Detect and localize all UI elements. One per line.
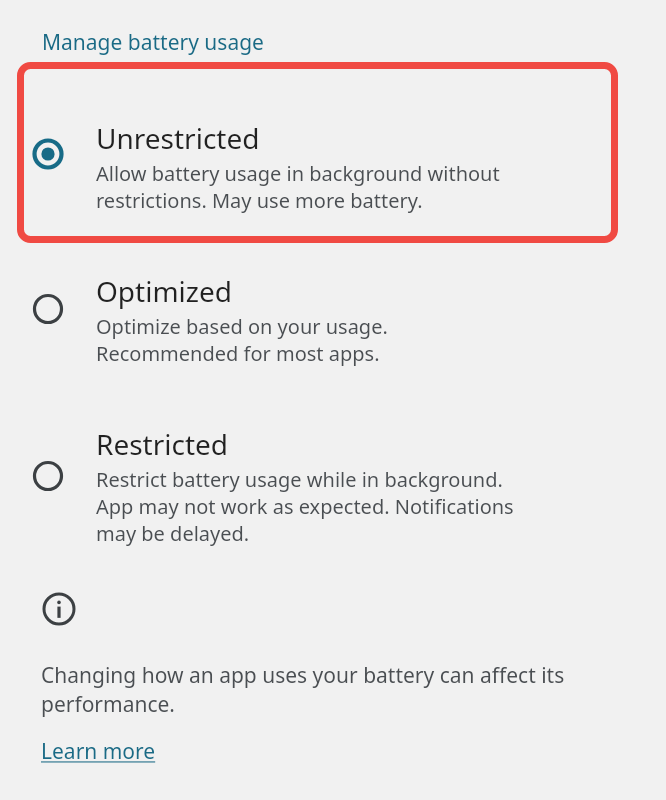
staticText: restrictions. May use more battery. (96, 187, 423, 214)
staticText: Restrict battery usage while in backgrou… (96, 466, 503, 493)
button[interactable]: Unrestricted (0, 79, 666, 214)
staticText: performance. (41, 690, 175, 719)
staticText: Changing how an app uses your battery ca… (41, 661, 565, 690)
button[interactable]: Restricted (0, 367, 666, 547)
staticText: Restricted (96, 425, 229, 463)
other: Information (41, 591, 77, 627)
staticText: Allow battery usage in background withou… (96, 160, 500, 187)
staticText: may be delayed. (96, 520, 250, 547)
staticText: Recommended for most apps. (96, 340, 380, 367)
button[interactable]: Manage battery usage (0, 28, 280, 57)
staticText: Optimize based on your usage. (96, 313, 388, 340)
staticText: Learn more (41, 737, 156, 766)
staticText: Optimized (96, 272, 232, 310)
staticText: Manage battery usage (42, 28, 264, 57)
staticText: App may not work as expected. Notificati… (96, 493, 514, 520)
button[interactable]: Optimized (0, 214, 666, 367)
staticText: Unrestricted (96, 119, 260, 157)
button[interactable]: Learn more (0, 737, 172, 766)
